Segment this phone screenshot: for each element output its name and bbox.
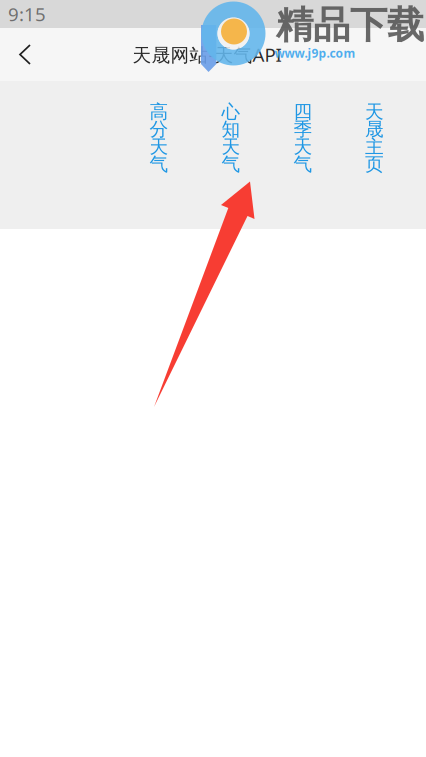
button[interactable]: 天 [365,103,384,173]
staticText: 主 [365,135,384,158]
staticText: 季 [293,118,312,141]
staticText: 天 [365,100,384,123]
staticText: 气 [149,153,168,176]
staticText: 天 [293,135,312,158]
staticText: 心 [221,100,240,123]
staticText: 天晟网站-天气API [132,42,281,67]
staticText: 9:15 [8,2,46,26]
button[interactable]: 心 [221,103,240,173]
staticText: 高 [149,100,168,123]
button[interactable]: Back [0,28,46,81]
staticText: 气 [221,153,240,176]
staticText: 晟 [365,118,384,141]
staticText: 天 [149,135,168,158]
staticText: 精品下载 [276,2,424,48]
button[interactable]: 高 [149,103,168,173]
staticText: 四 [293,100,312,123]
staticText: 页 [365,153,384,176]
button[interactable]: 四 [293,103,312,173]
staticText: 分 [149,118,168,141]
staticText: www.j9p.com [274,45,355,61]
staticText: 天 [221,135,240,158]
staticText: 气 [293,153,312,176]
staticText: 知 [221,118,240,141]
